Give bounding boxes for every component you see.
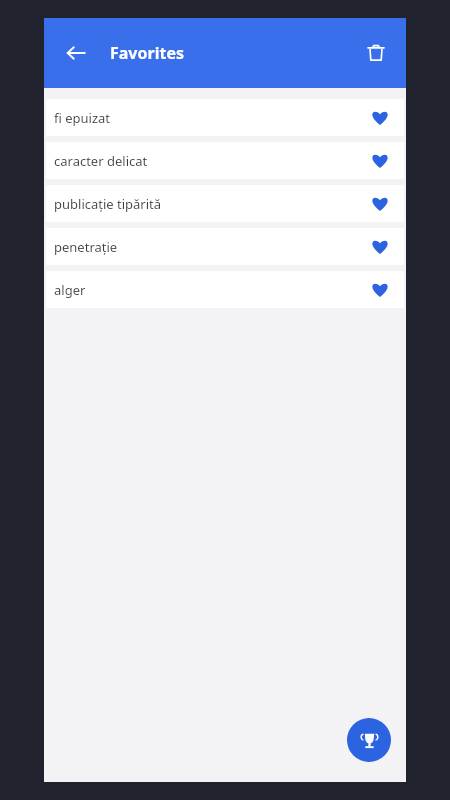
button[interactable]: Remove from favorites (361, 185, 398, 222)
button[interactable]: publicație tipărită (46, 185, 404, 222)
button[interactable]: caracter delicat (46, 142, 404, 179)
button[interactable]: Back (56, 33, 96, 73)
button[interactable]: Remove from favorites (361, 142, 398, 179)
button[interactable]: Remove from favorites (361, 271, 398, 308)
staticText: caracter delicat (54, 152, 361, 170)
staticText: penetrație (54, 238, 361, 256)
button[interactable]: Delete all favorites (356, 33, 396, 73)
staticText: publicație tipărită (54, 195, 361, 213)
button[interactable]: penetrație (46, 228, 404, 265)
button[interactable]: alger (46, 271, 404, 308)
button[interactable]: Achievements (347, 718, 391, 762)
button[interactable]: Remove from favorites (361, 99, 398, 136)
staticText: alger (54, 281, 361, 299)
staticText: Favorites (110, 42, 184, 64)
staticText: fi epuizat (54, 109, 361, 127)
button[interactable]: Remove from favorites (361, 228, 398, 265)
button[interactable]: fi epuizat (46, 99, 404, 136)
